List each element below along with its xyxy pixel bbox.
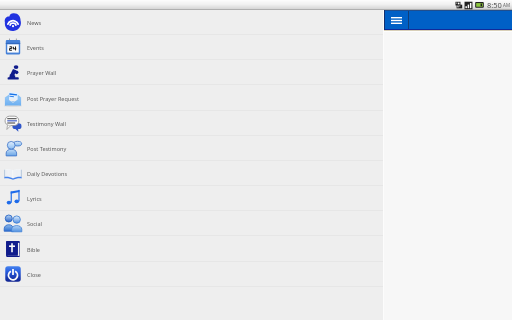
button[interactable]: News xyxy=(0,10,383,34)
button[interactable]: Daily Devotions xyxy=(0,161,383,185)
button[interactable]: Close xyxy=(0,262,383,286)
button[interactable]: Social xyxy=(0,211,383,235)
staticText: Post Testimony xyxy=(27,145,67,152)
button[interactable]: Prayer Wall xyxy=(0,60,383,84)
button[interactable]: Events xyxy=(0,35,383,59)
staticText: Social xyxy=(27,220,42,227)
staticText: Daily Devotions xyxy=(27,170,68,177)
button[interactable]: Bible xyxy=(0,237,383,261)
staticText: Lyrics xyxy=(27,195,42,202)
staticText: Bible xyxy=(27,246,40,253)
staticText: Events xyxy=(27,44,44,51)
staticText: 8:50 xyxy=(487,0,502,10)
button[interactable]: Open navigation menu xyxy=(384,10,409,30)
staticText: Close xyxy=(27,271,41,278)
staticText: Testimony Wall xyxy=(27,120,66,127)
button[interactable]: Lyrics xyxy=(0,186,383,210)
button[interactable]: Post Testimony xyxy=(0,136,383,160)
staticText: News xyxy=(27,19,42,26)
button[interactable]: Testimony Wall xyxy=(0,111,383,135)
staticText: Prayer Wall xyxy=(27,69,57,76)
staticText: Post Prayer Request xyxy=(27,95,79,102)
button[interactable]: Post Prayer Request xyxy=(0,86,383,110)
staticText: AM xyxy=(503,2,510,8)
